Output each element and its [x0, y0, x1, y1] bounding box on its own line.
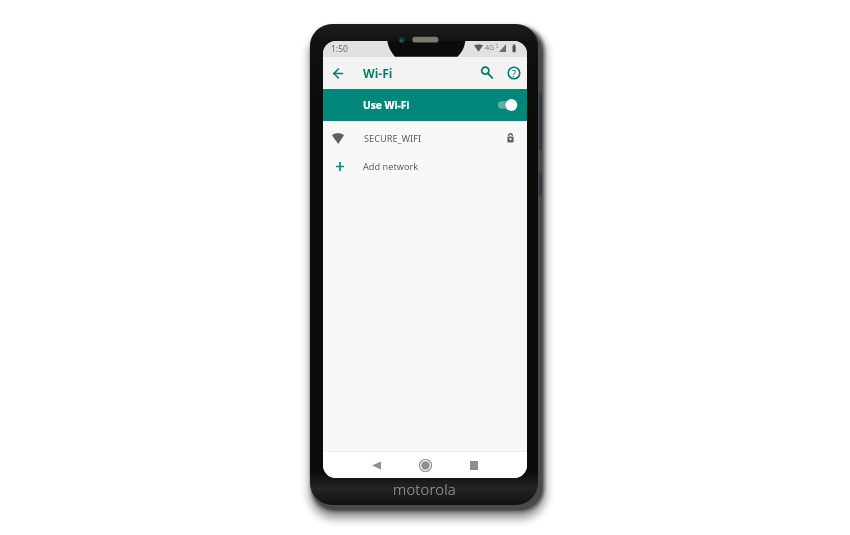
button[interactable]: Add network [323, 152, 527, 180]
staticText: SECURE_WIFI [364, 132, 422, 145]
staticText: 1:50 [331, 43, 348, 55]
button[interactable]: Use Wi-Fi [323, 89, 527, 121]
button[interactable]: Home [415, 455, 435, 475]
button[interactable]: Recent apps [464, 455, 484, 475]
button[interactable]: Use Wi-Fi toggle [493, 89, 517, 121]
staticText: motorola [393, 479, 456, 499]
staticText: Add network [363, 160, 419, 173]
button[interactable]: Back [366, 455, 386, 475]
staticText: 4G [485, 42, 495, 52]
button[interactable]: Search [478, 64, 496, 82]
staticText: Wi-Fi [363, 65, 393, 81]
staticText: ? [512, 67, 517, 79]
button[interactable]: Navigate up [330, 65, 346, 81]
staticText: Use Wi-Fi [363, 98, 410, 112]
button[interactable]: Help [505, 64, 523, 82]
button[interactable]: SECURE_WIFI [323, 124, 527, 152]
